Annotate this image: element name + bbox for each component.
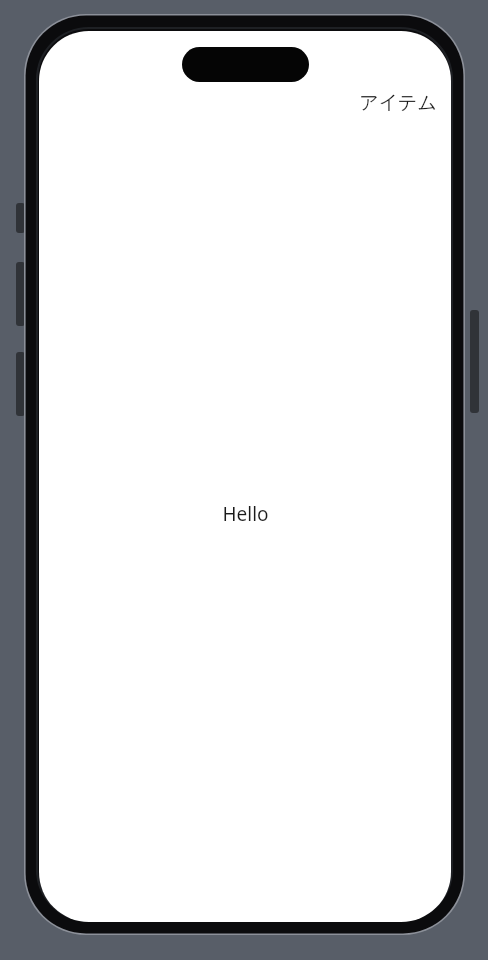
staticText: アイテム bbox=[359, 91, 437, 115]
staticText: Hello bbox=[222, 501, 269, 527]
button[interactable]: アイテム bbox=[39, 91, 437, 115]
other: Dynamic Island bbox=[182, 47, 309, 82]
